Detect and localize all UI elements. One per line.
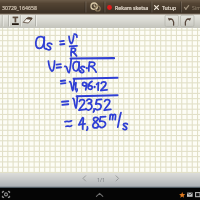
button[interactable]: Rekam sketsa (106, 0, 150, 14)
staticText: Rekam sketsa (115, 4, 149, 11)
button[interactable]: Undo (166, 16, 177, 27)
button[interactable]: History (90, 1, 102, 13)
staticText: Tutup (162, 4, 177, 11)
button[interactable]: Favorites (179, 192, 186, 199)
button[interactable]: Mail (187, 192, 193, 198)
staticText: 30729_164658 (2, 4, 37, 11)
button[interactable]: Eraser (22, 15, 33, 26)
button[interactable]: Text tool (10, 15, 21, 26)
button[interactable]: Previous page (80, 174, 89, 183)
staticText: Sim (192, 4, 200, 11)
staticText: 1/1 (97, 176, 105, 183)
button[interactable]: Next page (113, 174, 122, 183)
button[interactable]: Workspace switcher (2, 191, 10, 199)
button[interactable]: Show hidden icons (95, 191, 105, 200)
button[interactable]: Tutup (153, 0, 178, 14)
button[interactable]: Application (195, 192, 200, 198)
button[interactable]: Sim (183, 0, 200, 14)
button[interactable]: Redo (182, 16, 193, 27)
